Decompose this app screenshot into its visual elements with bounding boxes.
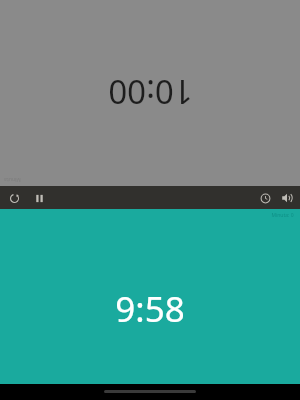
button[interactable]: Restart	[4, 188, 24, 208]
button[interactable]: 9:58	[0, 285, 300, 333]
staticText: 9:58	[115, 285, 185, 333]
button[interactable]: Volume	[277, 188, 297, 208]
button[interactable]: Clock	[255, 188, 275, 208]
staticText: Minuta	[4, 176, 21, 183]
staticText: 10:00	[108, 70, 193, 115]
button[interactable]: Home gesture	[104, 390, 196, 393]
button[interactable]: Pause	[29, 188, 49, 208]
staticText: Minuta: 0	[271, 212, 294, 219]
